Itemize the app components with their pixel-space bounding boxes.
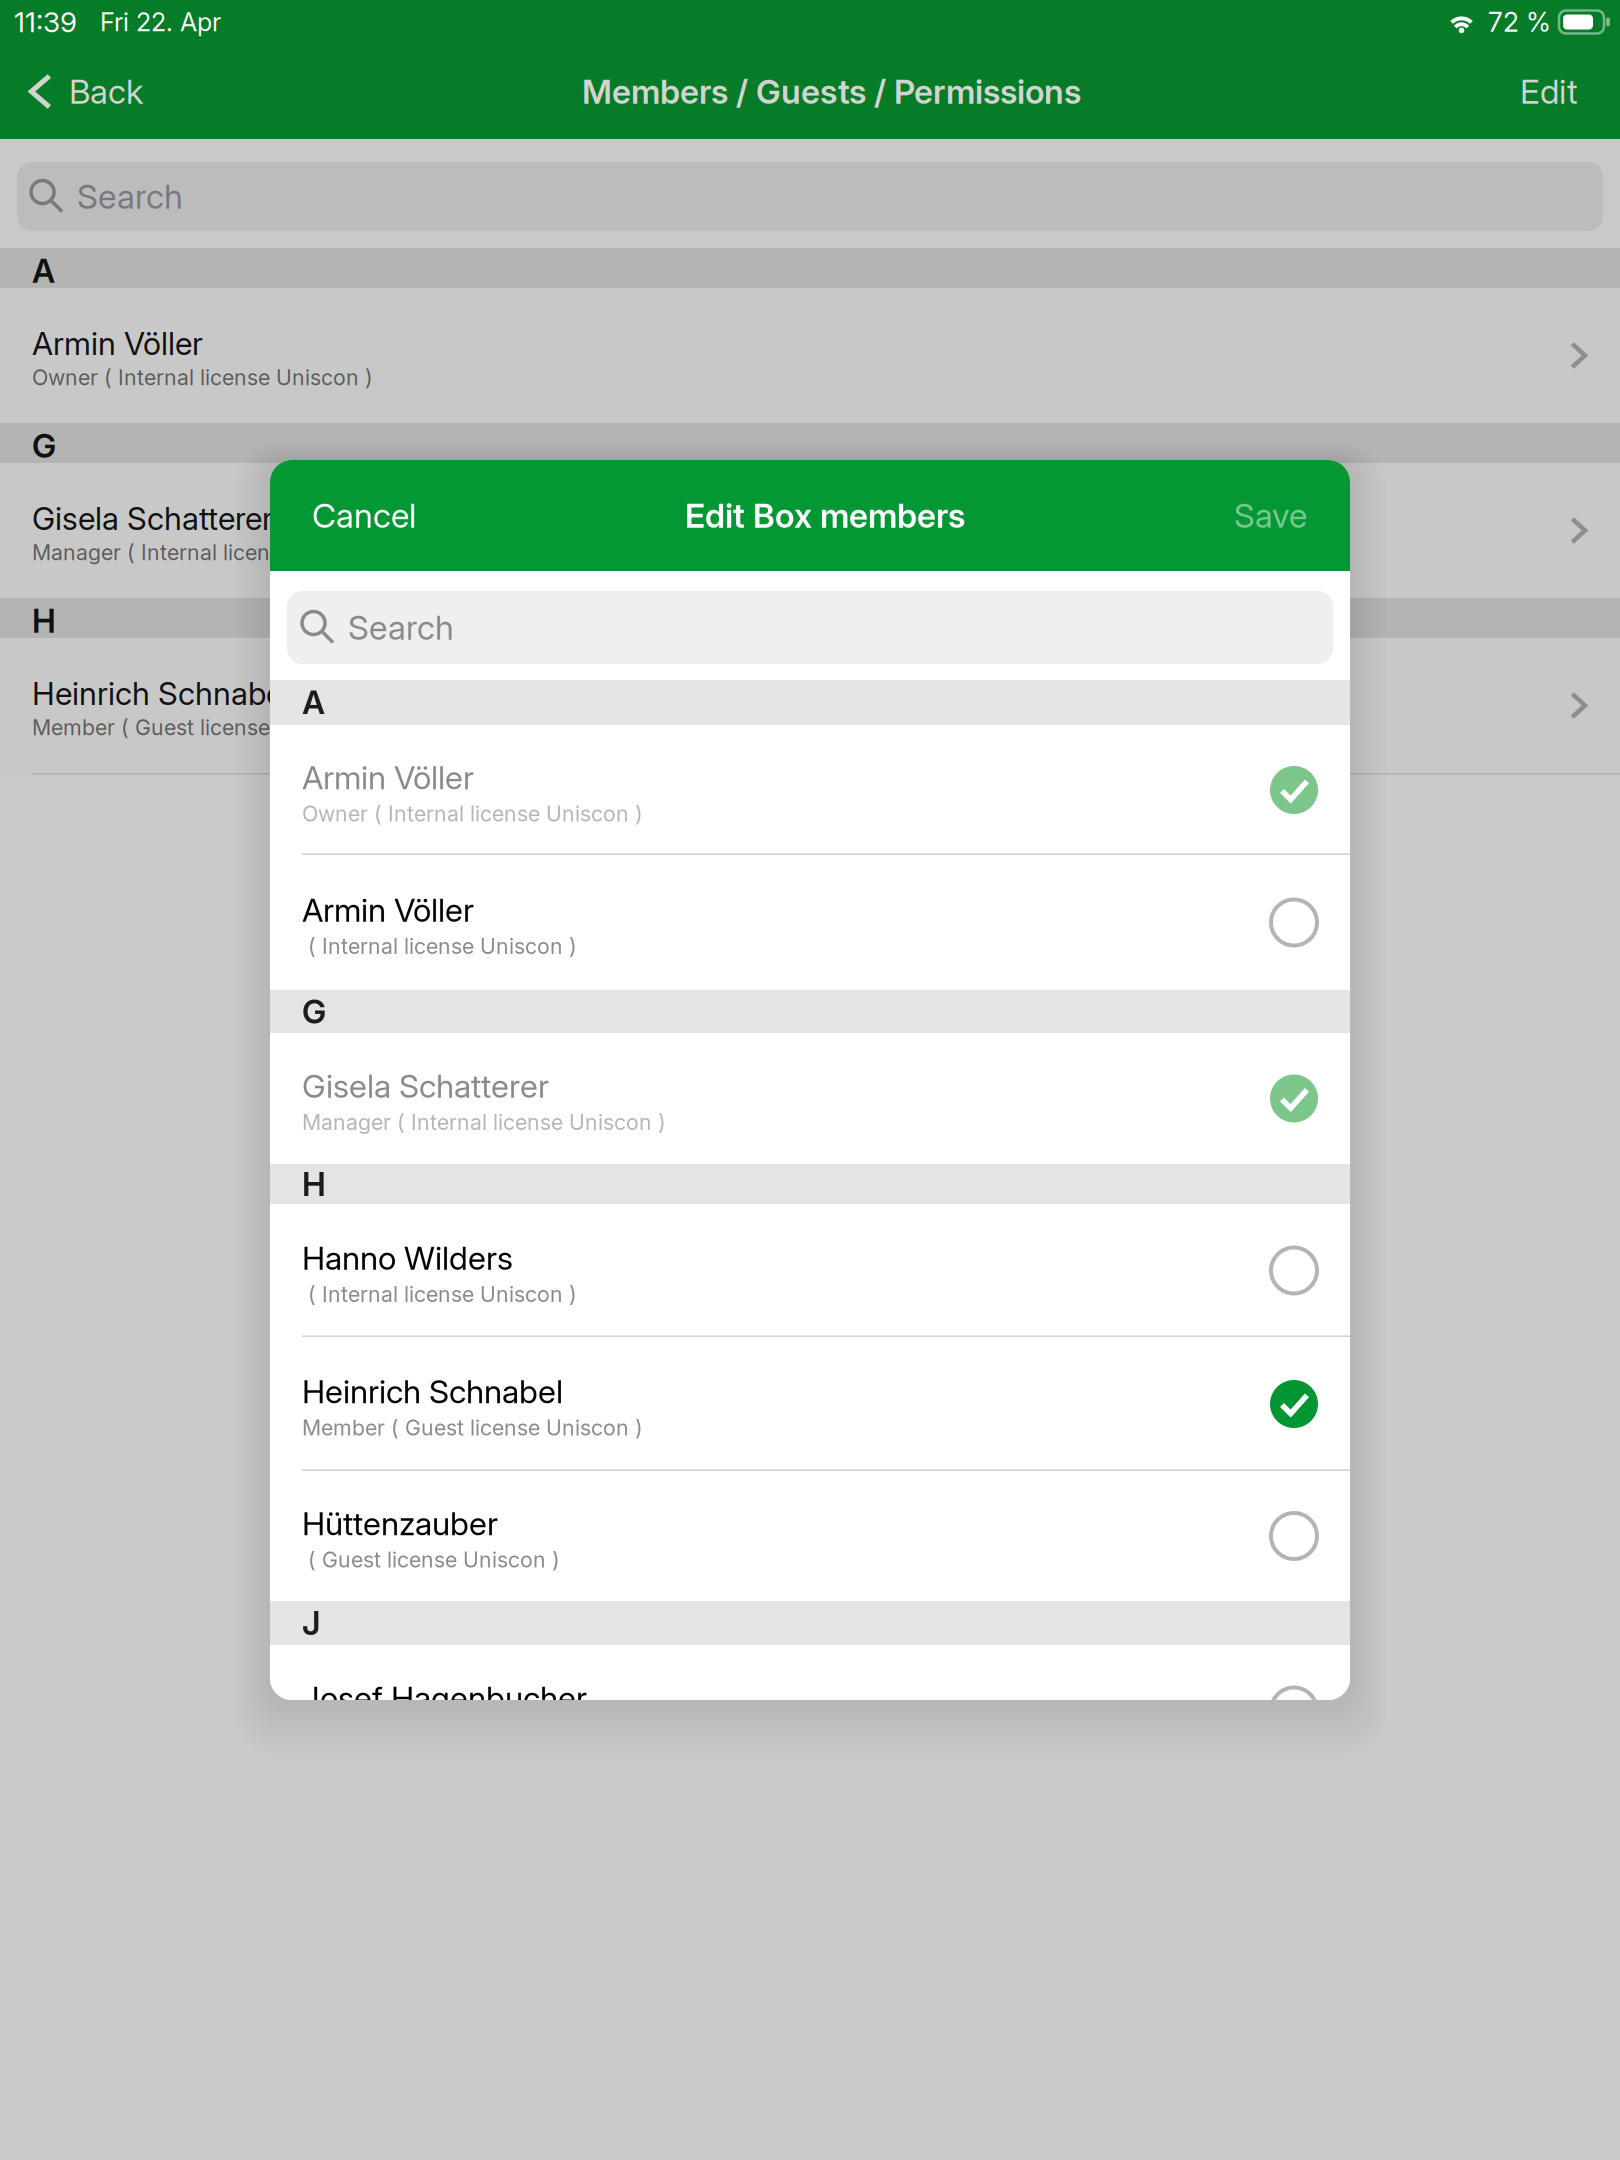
- button[interactable]: Armin Völler: [270, 855, 1350, 990]
- staticText: G: [302, 992, 326, 1031]
- button[interactable]: Heinrich Schnabel: [270, 1337, 1350, 1471]
- staticText: Search: [348, 607, 454, 648]
- staticText: Fri 22. Apr: [100, 7, 221, 37]
- staticText: 11:39: [14, 5, 77, 39]
- staticText: Gisela Schatterer: [302, 1067, 549, 1105]
- staticText: Armin Völler: [32, 325, 203, 362]
- button[interactable]: Search: [17, 162, 1603, 231]
- staticText: Save: [1234, 495, 1307, 536]
- staticText: Edit Box members: [685, 495, 965, 536]
- staticText: Member ( Guest license Uniscon ): [302, 1415, 643, 1441]
- staticText: ( Guest license Uniscon ): [302, 1547, 560, 1573]
- staticText: Heinrich Schnabel: [302, 1372, 563, 1411]
- staticText: Armin Völler: [302, 891, 474, 929]
- staticText: Hüttenzauber: [302, 1504, 498, 1543]
- button[interactable]: Heinrich Schnabel: [0, 638, 1620, 773]
- staticText: Owner ( Internal license Uniscon ): [302, 801, 643, 827]
- staticText: Cancel: [312, 495, 416, 536]
- staticText: Back: [69, 71, 143, 112]
- button[interactable]: Search: [287, 591, 1333, 664]
- button[interactable]: Edit: [1520, 44, 1620, 139]
- staticText: Owner ( Internal license Uniscon ): [32, 364, 373, 390]
- staticText: A: [302, 683, 325, 722]
- button[interactable]: Hanno Wilders: [270, 1204, 1350, 1337]
- button[interactable]: Gisela Schatterer: [270, 1033, 1350, 1164]
- staticText: ( Internal license Uniscon ): [302, 1281, 577, 1307]
- staticText: Gisela Schatterer: [32, 500, 273, 537]
- button[interactable]: Josef Hagenbucher: [270, 1645, 1350, 1776]
- staticText: Search: [77, 176, 183, 217]
- staticText: H: [32, 601, 56, 640]
- staticText: Manager ( Internal license Uniscon ): [32, 539, 396, 565]
- staticText: Josef Hagenbucher: [302, 1679, 587, 1717]
- button[interactable]: Cancel: [270, 460, 416, 571]
- staticText: H: [302, 1164, 326, 1204]
- button[interactable]: Back: [0, 44, 143, 139]
- staticText: G: [32, 426, 56, 465]
- button[interactable]: Armin Völler: [270, 725, 1350, 855]
- staticText: Manager ( Internal license Uniscon ): [302, 1109, 666, 1135]
- staticText: Armin Völler: [302, 758, 474, 797]
- staticText: Edit: [1520, 71, 1578, 112]
- button[interactable]: Armin Völler: [0, 288, 1620, 423]
- staticText: A: [32, 251, 55, 290]
- staticText: Heinrich Schnabel: [32, 675, 290, 712]
- staticText: Hanno Wilders: [302, 1239, 513, 1277]
- staticText: ( Internal license Uniscon ): [302, 933, 577, 959]
- button[interactable]: Gisela Schatterer: [0, 463, 1620, 598]
- button[interactable]: Save: [1234, 460, 1350, 571]
- button[interactable]: Hüttenzauber: [270, 1471, 1350, 1601]
- staticText: 72 %: [1488, 6, 1551, 38]
- staticText: Member ( Guest license Uniscon ): [32, 714, 373, 740]
- staticText: J: [302, 1603, 320, 1643]
- staticText: Members / Guests / Permissions: [582, 71, 1081, 112]
